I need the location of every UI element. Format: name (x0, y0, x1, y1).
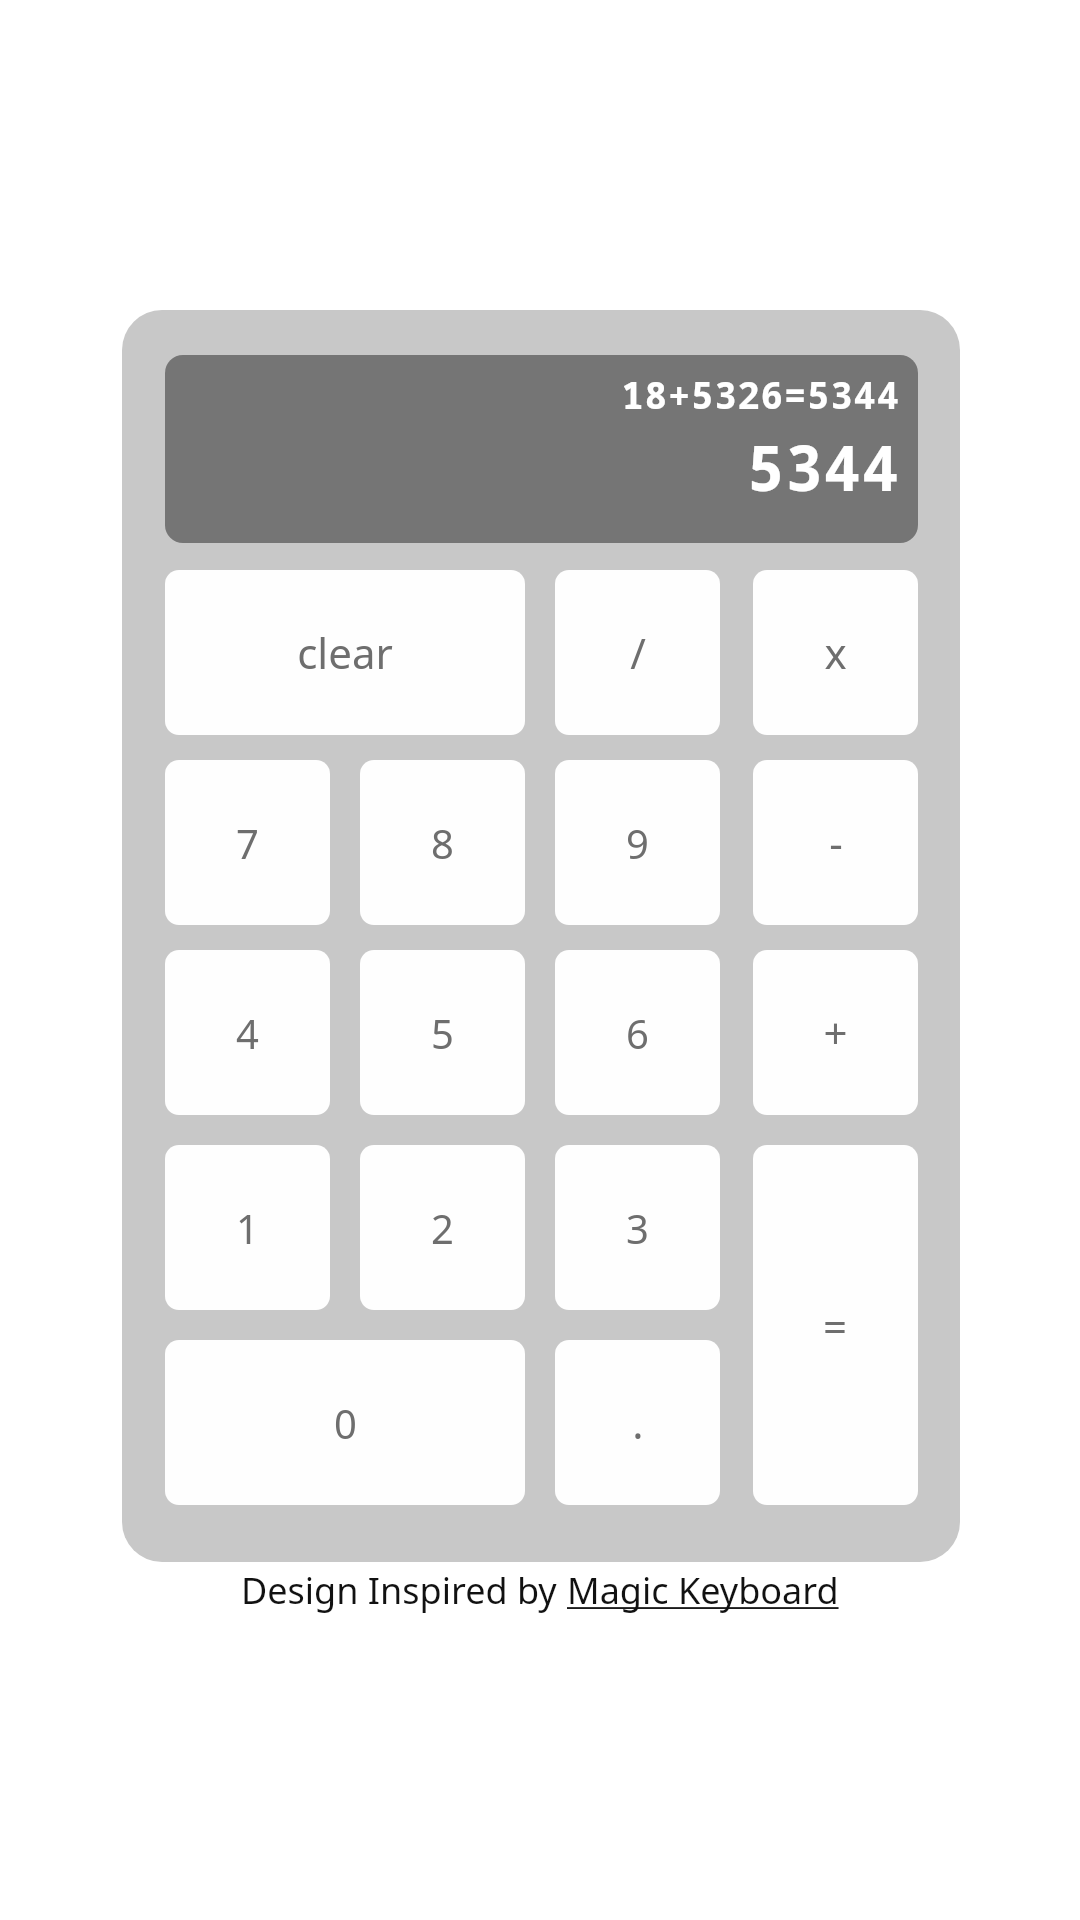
button[interactable]: 7 (165, 760, 330, 925)
staticText: 7 (236, 816, 259, 870)
staticText: . (632, 1394, 644, 1451)
button[interactable]: clear (165, 570, 525, 735)
button[interactable]: 6 (555, 950, 720, 1115)
button[interactable]: 0 (165, 1340, 525, 1505)
staticText: 6 (626, 1006, 649, 1060)
staticText: 1 (236, 1201, 259, 1255)
staticText: 5344 (747, 425, 900, 509)
button[interactable]: + (753, 950, 918, 1115)
staticText: x (824, 624, 847, 681)
staticText: 5 (431, 1006, 454, 1060)
staticText: 8 (431, 816, 454, 870)
button[interactable]: 5 (360, 950, 525, 1115)
staticText: 2 (431, 1201, 454, 1255)
button[interactable]: 4 (165, 950, 330, 1115)
button[interactable]: 2 (360, 1145, 525, 1310)
staticText: 3 (626, 1201, 649, 1255)
button[interactable]: - (753, 760, 918, 925)
button[interactable]: / (555, 570, 720, 735)
button[interactable]: 9 (555, 760, 720, 925)
staticText: 0 (334, 1396, 357, 1450)
button[interactable]: Equals (753, 1145, 918, 1505)
staticText: / (630, 624, 646, 681)
button[interactable]: 3 (555, 1145, 720, 1310)
button[interactable]: 8 (360, 760, 525, 925)
staticText: clear (297, 624, 393, 681)
staticText: 4 (236, 1006, 259, 1060)
button[interactable]: . (555, 1340, 720, 1505)
staticText: Design Inspired by (241, 1566, 567, 1615)
staticText: 18+5326=5344 (621, 369, 900, 419)
button[interactable]: Magic Keyboard (567, 1566, 839, 1615)
staticText: + (823, 1004, 848, 1061)
staticText: 9 (626, 816, 649, 870)
button[interactable]: x (753, 570, 918, 735)
staticText: - (829, 814, 843, 871)
staticText: = (823, 1297, 848, 1354)
button[interactable]: 1 (165, 1145, 330, 1310)
staticText: Magic Keyboard (567, 1566, 839, 1615)
